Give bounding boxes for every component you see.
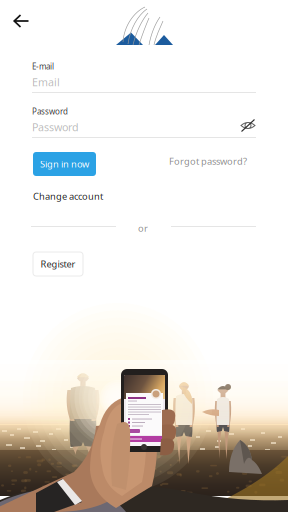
staticText: Register [40,258,75,270]
staticText: or [138,222,148,234]
staticText: Email [32,75,60,89]
button[interactable]: Register [33,252,83,276]
button[interactable]: Sign in now [33,152,96,176]
staticText: E-mail [32,61,54,72]
button[interactable]: Change account [33,190,103,202]
button[interactable]: Back [3,3,40,39]
staticText: Sign in now [40,158,89,170]
button[interactable]: Forgot password? [169,155,247,167]
staticText: Change account [33,190,103,202]
staticText: Forgot password? [169,155,247,167]
staticText: Password [32,120,79,134]
staticText: Password [32,106,68,117]
